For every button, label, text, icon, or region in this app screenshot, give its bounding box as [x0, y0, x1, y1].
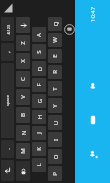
- staticText: V: [19, 95, 27, 99]
- button[interactable]: Device: [87, 114, 99, 126]
- staticText: H: [35, 114, 43, 119]
- staticText: B: [19, 113, 27, 117]
- button[interactable]: B: [16, 107, 30, 123]
- staticText: U: [51, 120, 59, 125]
- staticText: W: [51, 37, 59, 43]
- button[interactable]: Switch input method: [64, 24, 75, 35]
- button[interactable]: T: [48, 81, 62, 96]
- staticText: Y: [51, 104, 59, 108]
- button[interactable]: ,: [1, 43, 14, 61]
- button[interactable]: Contact: [87, 80, 99, 92]
- button[interactable]: Enter: [1, 160, 14, 181]
- button[interactable]: S: [32, 44, 46, 59]
- staticText: 10:47: [89, 6, 97, 22]
- button[interactable]: I: [48, 132, 62, 147]
- staticText: J: [35, 132, 43, 134]
- staticText: R: [51, 70, 59, 74]
- staticText: L: [35, 163, 43, 167]
- button[interactable]: Shift: [16, 161, 30, 181]
- button[interactable]: &123: [1, 17, 14, 41]
- staticText: space: [5, 95, 10, 106]
- staticText: T: [51, 87, 59, 91]
- staticText: C: [19, 77, 27, 81]
- button[interactable]: Tab: [16, 17, 30, 33]
- button[interactable]: N: [16, 125, 30, 141]
- button[interactable]: space: [1, 63, 14, 138]
- staticText: S: [35, 50, 43, 54]
- staticText: X: [19, 59, 27, 63]
- staticText: O: [51, 154, 59, 159]
- staticText: A: [35, 33, 43, 37]
- staticText: I: [51, 138, 59, 141]
- button[interactable]: Z: [16, 35, 30, 51]
- button[interactable]: Q: [48, 17, 62, 31]
- button[interactable]: D: [32, 61, 46, 76]
- button[interactable]: J: [32, 126, 46, 140]
- button[interactable]: C: [16, 71, 30, 87]
- button[interactable]: H: [32, 110, 46, 124]
- staticText: Z: [19, 41, 27, 45]
- button[interactable]: F: [32, 78, 46, 92]
- staticText: E: [51, 54, 59, 58]
- staticText: &123: [5, 24, 10, 34]
- button[interactable]: M: [16, 143, 30, 159]
- button[interactable]: W: [48, 33, 62, 47]
- button[interactable]: V: [16, 89, 30, 105]
- button[interactable]: Y: [48, 98, 62, 113]
- button[interactable]: G: [32, 94, 46, 108]
- button[interactable]: Add contact: [87, 148, 99, 160]
- staticText: D: [35, 66, 43, 71]
- staticText: G: [35, 98, 43, 103]
- staticText: .: [4, 148, 12, 150]
- staticText: P: [51, 172, 59, 176]
- staticText: K: [35, 147, 43, 151]
- button[interactable]: O: [48, 149, 62, 164]
- button[interactable]: U: [48, 115, 62, 130]
- button[interactable]: L: [32, 158, 46, 172]
- button[interactable]: A: [32, 27, 46, 42]
- staticText: F: [35, 83, 43, 87]
- staticText: ,: [4, 51, 12, 53]
- button[interactable]: .: [1, 140, 14, 158]
- button[interactable]: X: [16, 53, 30, 69]
- staticText: N: [19, 130, 27, 135]
- staticText: M: [19, 148, 27, 154]
- button[interactable]: E: [48, 49, 62, 63]
- button[interactable]: K: [32, 142, 46, 156]
- button[interactable]: R: [48, 65, 62, 79]
- button[interactable]: P: [48, 166, 62, 181]
- staticText: Q: [51, 21, 59, 26]
